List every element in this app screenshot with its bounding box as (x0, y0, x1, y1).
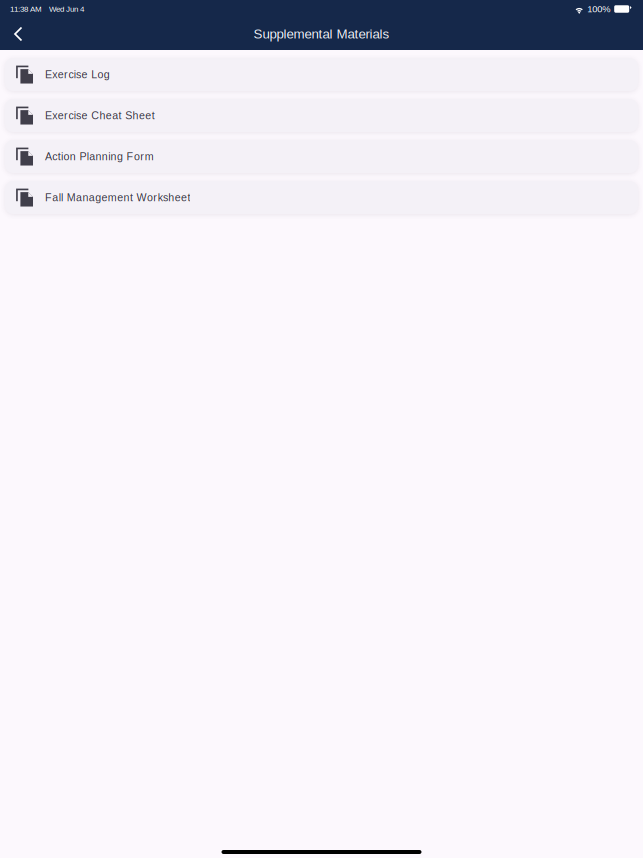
button[interactable]: Exercise Log (5, 58, 638, 91)
staticText: Exercise Cheat Sheet (45, 109, 155, 121)
staticText: Fall Management Worksheet (45, 191, 190, 203)
staticText: Wed Jun 4 (49, 4, 84, 13)
staticText: 11:38 AM (10, 4, 42, 13)
button[interactable]: Back (7, 23, 29, 45)
staticText: 100% (587, 4, 610, 14)
button[interactable]: Fall Management Worksheet (5, 181, 638, 214)
button[interactable]: Action Planning Form (5, 140, 638, 173)
staticText: Supplemental Materials (253, 27, 389, 41)
button[interactable]: Exercise Cheat Sheet (5, 99, 638, 132)
staticText: Exercise Log (45, 68, 110, 80)
staticText: Action Planning Form (45, 150, 154, 162)
